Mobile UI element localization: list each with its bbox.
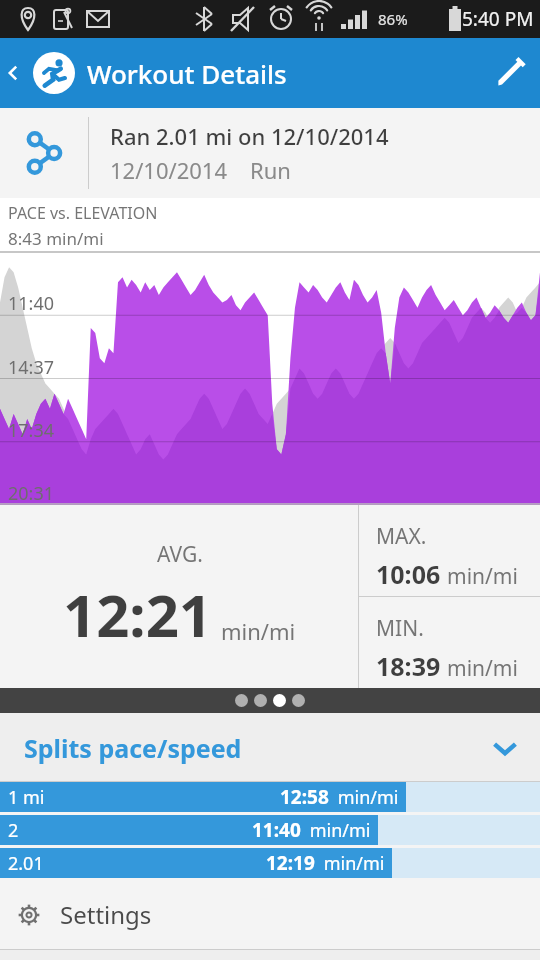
staticText: min/mi xyxy=(447,654,518,683)
staticText: 18:39 xyxy=(376,649,441,683)
button[interactable] xyxy=(235,694,248,707)
staticText: 10:06 xyxy=(376,557,441,591)
button[interactable]: MIN. xyxy=(359,597,540,688)
staticText: min/mi xyxy=(305,818,371,843)
button[interactable]: Ran 2.01 mi on 12/10/2014 xyxy=(0,108,540,198)
button[interactable]: 2.01 xyxy=(0,848,540,878)
staticText: min/mi xyxy=(447,562,518,591)
button[interactable] xyxy=(254,694,267,707)
staticText: 2 xyxy=(8,818,19,843)
staticText: 86% xyxy=(378,9,408,29)
staticText: 20:31 xyxy=(8,481,55,506)
button[interactable] xyxy=(292,694,305,707)
button[interactable]: Edit xyxy=(482,38,540,108)
staticText: MAX. xyxy=(376,522,427,551)
staticText: min/mi xyxy=(333,785,399,810)
staticText: 12:19 xyxy=(266,850,315,876)
button[interactable]: MAX. xyxy=(359,505,540,596)
staticText: Workout Details xyxy=(87,56,287,91)
staticText: Splits pace/speed xyxy=(24,731,242,765)
staticText: MIN. xyxy=(376,614,424,643)
staticText: 14:37 xyxy=(8,355,55,380)
staticText: AVG. xyxy=(157,540,203,569)
button[interactable]: Settings xyxy=(0,878,540,950)
staticText: 12:21 xyxy=(63,575,213,654)
button[interactable]: Back xyxy=(0,38,26,108)
button[interactable]: AVG. xyxy=(0,505,358,688)
staticText: 5:40 PM xyxy=(462,6,534,32)
staticText: 8:43 min/mi xyxy=(8,227,104,250)
staticText: 12:58 xyxy=(280,784,329,810)
button[interactable]: 2 xyxy=(0,815,540,845)
staticText: 2.01 xyxy=(8,851,44,876)
staticText: min/mi xyxy=(221,616,296,646)
button[interactable]: Splits pace/speed xyxy=(0,713,540,782)
staticText: Run xyxy=(250,155,291,185)
staticText: 1 mi xyxy=(8,785,45,810)
staticText: min/mi xyxy=(319,851,385,876)
staticText: Ran 2.01 mi on 12/10/2014 xyxy=(110,121,389,151)
staticText: 11:40 xyxy=(8,291,55,316)
staticText: 12/10/2014 xyxy=(110,155,228,185)
button[interactable] xyxy=(273,694,286,707)
staticText: 17:34 xyxy=(8,418,55,443)
staticText: PACE vs. ELEVATION xyxy=(8,202,158,224)
staticText: 11:40 xyxy=(252,817,301,843)
button[interactable]: 1 mi xyxy=(0,782,540,812)
staticText: Settings xyxy=(60,898,152,931)
